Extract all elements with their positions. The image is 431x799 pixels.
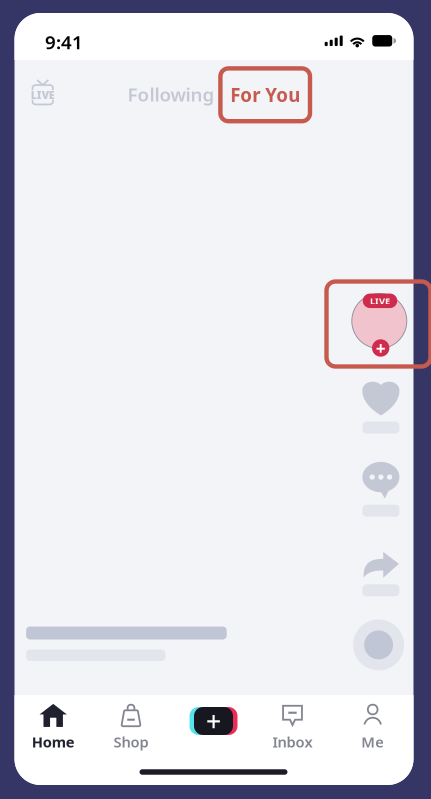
button[interactable]: Create — [180, 698, 246, 744]
staticText: + — [206, 703, 221, 739]
button[interactable]: Share — [355, 551, 407, 596]
button[interactable]: Following — [123, 72, 219, 116]
staticText: For You — [230, 82, 300, 107]
button[interactable]: Me — [337, 702, 409, 750]
staticText: Inbox — [272, 732, 312, 752]
staticText: LIVE — [31, 88, 55, 102]
button[interactable]: Creator profile, LIVE — [326, 281, 430, 366]
staticText: 9:41 — [45, 29, 83, 54]
staticText: LIVE — [370, 295, 390, 307]
button[interactable]: Like — [355, 380, 407, 434]
button[interactable]: LIVE — [21, 70, 65, 114]
button[interactable]: Shop — [95, 702, 167, 750]
staticText: Following — [127, 82, 214, 107]
staticText: Home — [32, 732, 75, 752]
staticText: + — [376, 336, 386, 359]
button[interactable]: For You — [220, 68, 310, 121]
button[interactable]: Inbox — [256, 702, 328, 750]
staticText: Shop — [113, 732, 148, 752]
button[interactable]: Comments — [355, 462, 407, 517]
staticText: Me — [361, 732, 384, 752]
button[interactable]: Home — [17, 702, 89, 750]
